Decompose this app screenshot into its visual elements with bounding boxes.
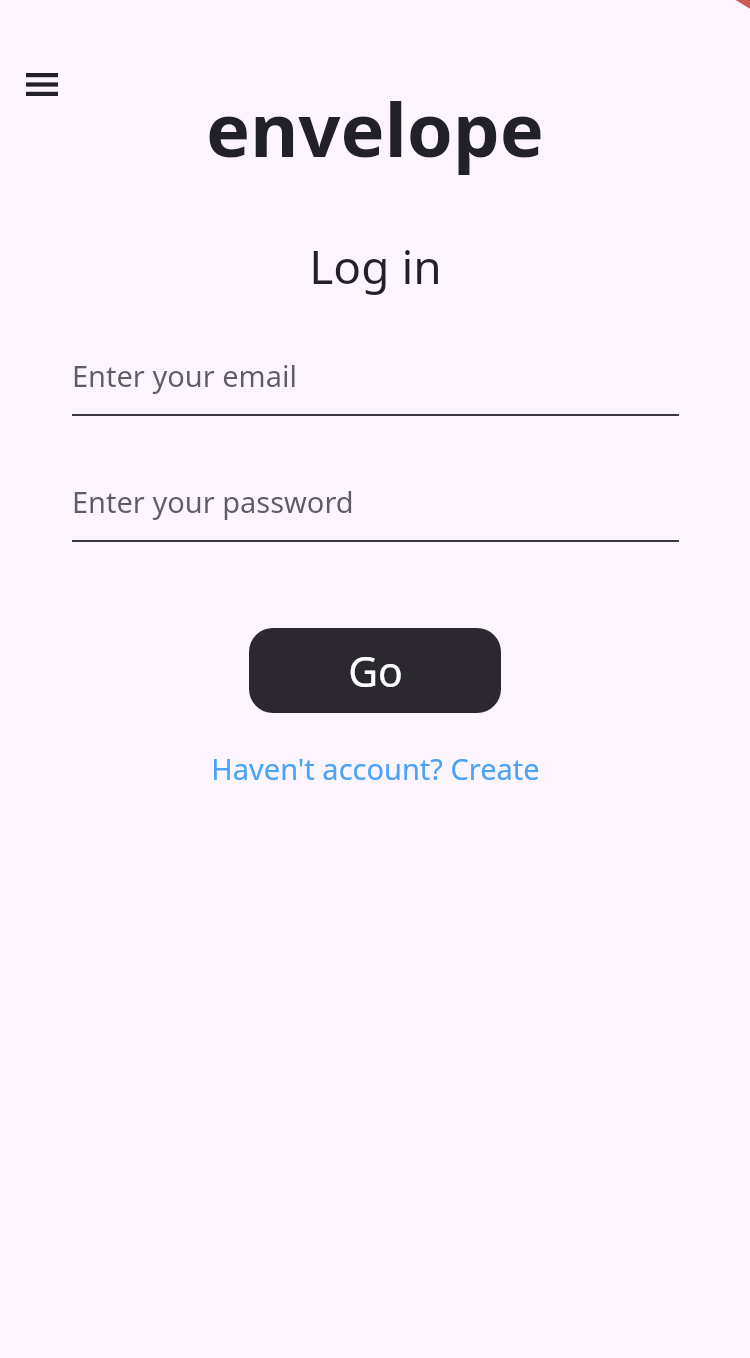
staticText: Go: [348, 643, 403, 699]
button[interactable]: Haven't account? Create: [203, 745, 548, 792]
button[interactable]: Enter your email: [72, 352, 679, 416]
staticText: Haven't account? Create: [211, 749, 540, 788]
staticText: envelope: [206, 78, 544, 179]
staticText: Enter your password: [72, 482, 354, 521]
button[interactable]: Go: [249, 628, 501, 713]
button[interactable]: Open navigation menu: [14, 56, 70, 112]
button[interactable]: Enter your password: [72, 478, 679, 542]
staticText: Enter your email: [72, 356, 297, 395]
staticText: Log in: [309, 235, 442, 298]
